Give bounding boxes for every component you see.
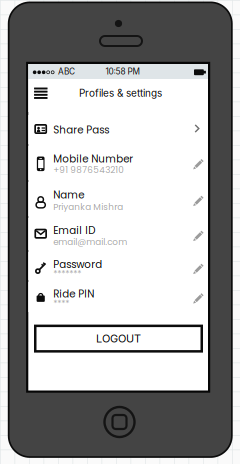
button[interactable]: Email ID [28,218,208,250]
button[interactable]: Name [28,182,208,216]
staticText: 10:58 PM [105,66,139,76]
staticText: LOGOUT [96,332,141,345]
staticText: Name [53,188,84,202]
staticText: Profiles & settings [79,87,162,99]
staticText: Share Pass [53,123,109,137]
staticText: ******* [53,268,81,280]
button[interactable]: Password [28,252,208,280]
button[interactable]: Ride PIN [28,282,208,312]
staticText: Priyanka Mishra [53,201,123,213]
button[interactable]: Share Pass [28,115,208,144]
button[interactable]: Menu [30,82,52,104]
staticText: Ride PIN [53,287,94,301]
staticText: Mobile Number [53,152,133,166]
staticText: email@mail.com [53,236,127,248]
staticText: Email ID [53,223,95,238]
button[interactable]: Mobile Number [28,146,208,180]
staticText: Password [53,257,102,272]
staticText: ABC [58,66,75,76]
button[interactable]: LOGOUT [34,325,203,353]
staticText: +91 9876543210 [53,164,124,176]
staticText: **** [53,297,69,310]
